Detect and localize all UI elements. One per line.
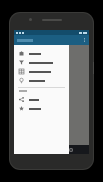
button[interactable]: Home [14,49,69,58]
other: Share [19,97,24,102]
button[interactable]: Share [14,95,69,104]
button[interactable]: More options [83,37,86,43]
button[interactable]: Rate [14,104,69,113]
button[interactable]: Recents [69,148,73,152]
other: Tips [19,78,24,83]
other: Rate [19,106,24,111]
button[interactable]: Filter [14,58,69,67]
other: List [19,69,24,74]
button[interactable]: List [14,67,69,76]
other: Home [19,51,24,56]
other: Filter [19,60,24,65]
button[interactable]: Tips [14,76,69,85]
